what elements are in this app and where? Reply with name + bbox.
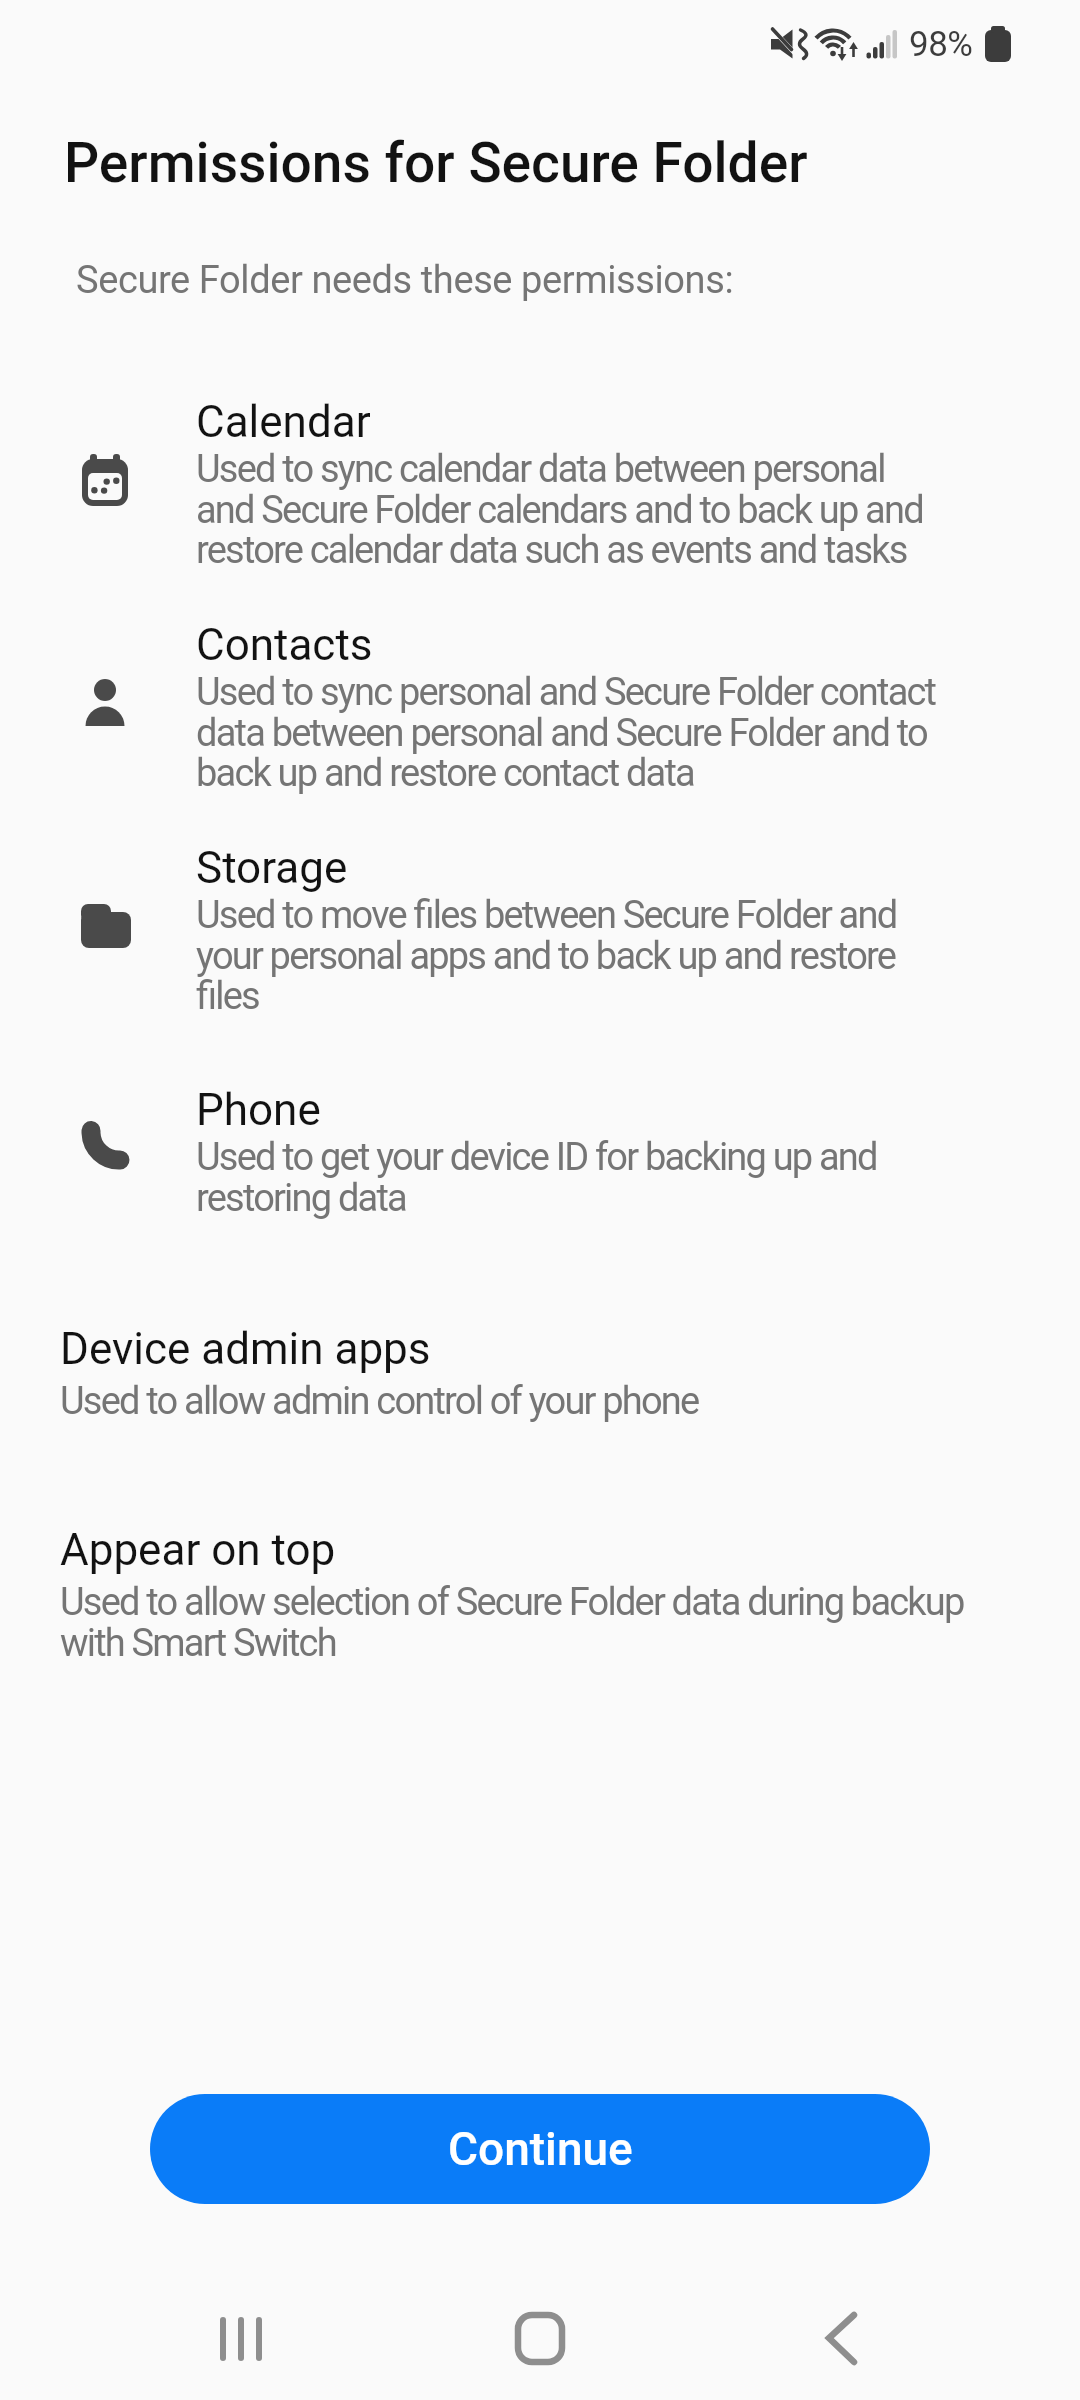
staticText: 98% [909,24,973,65]
staticText: Used to sync personal and Secure Folder … [196,670,1080,795]
staticText: Used to move files between Secure Folder… [196,893,1080,1018]
button[interactable]: Appear on top [60,1524,336,1576]
staticText: Appear on top [60,1524,336,1576]
button[interactable]: Calendar [196,396,371,448]
staticText: Used to allow admin control of your phon… [60,1379,1075,1424]
staticText: Continue [448,2122,633,2176]
staticText: Permissions for Secure Folder [64,131,808,195]
staticText: Phone [196,1084,321,1136]
staticText: Contacts [196,619,373,671]
button[interactable]: Device admin apps [60,1323,431,1375]
staticText: Calendar [196,396,371,448]
staticText: Used to sync calendar data between perso… [196,447,1080,572]
staticText: Used to allow selection of Secure Folder… [60,1580,1075,1665]
button[interactable]: Phone [196,1084,321,1136]
button[interactable]: Storage [196,842,348,894]
button[interactable]: Continue [150,2094,930,2204]
staticText: Secure Folder needs these permissions: [76,258,734,303]
staticText: Device admin apps [60,1323,431,1375]
button[interactable]: Contacts [196,619,373,671]
staticText: Storage [196,842,348,894]
staticText: Used to get your device ID for backing u… [196,1135,1080,1220]
